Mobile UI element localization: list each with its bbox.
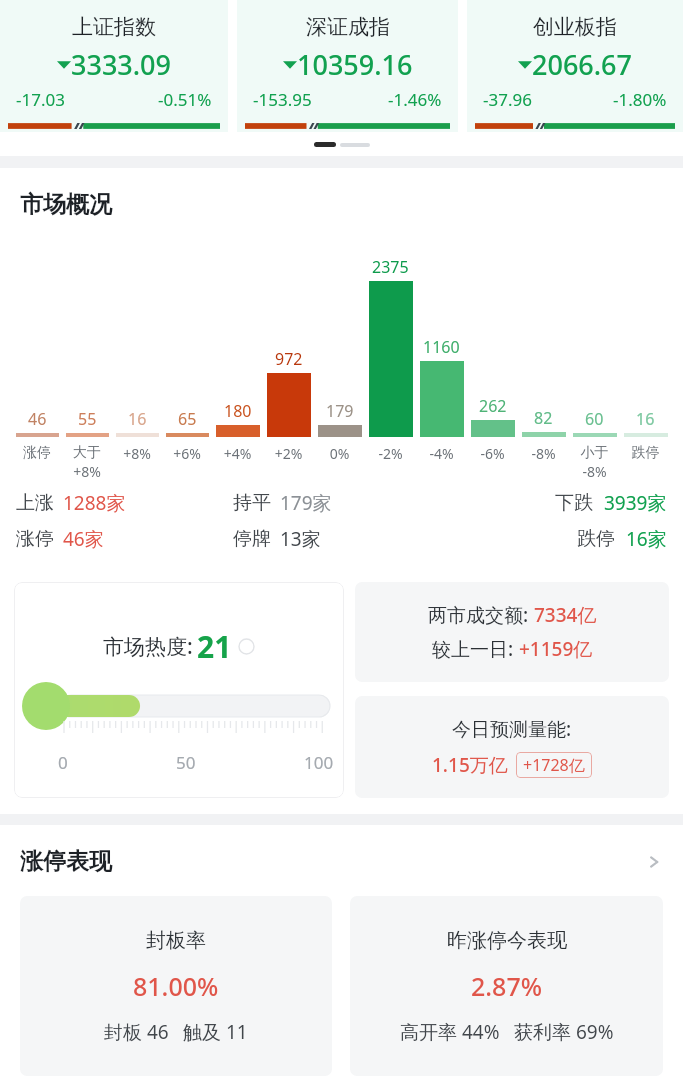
staticText: -37.96 — [483, 88, 532, 111]
staticText: 3939家 — [604, 490, 667, 516]
button[interactable]: 涨停表现 — [0, 847, 683, 876]
staticText: 2.87% — [471, 969, 543, 1003]
staticText: 封板 46 — [104, 1019, 169, 1045]
staticText: +1728亿 — [523, 754, 585, 776]
button[interactable]: 封板率 — [20, 896, 332, 1076]
staticText: 2066.67 — [532, 46, 633, 83]
staticText: 涨停 — [12, 444, 62, 462]
staticText: 16 — [128, 408, 147, 430]
staticText: 55 — [78, 408, 97, 430]
staticText: 触及 11 — [183, 1019, 248, 1045]
staticText: -8% — [518, 444, 569, 463]
staticText: 0 — [58, 751, 68, 774]
staticText: 创业板指 — [533, 14, 617, 40]
staticText: 上证指数 — [72, 14, 156, 40]
staticText: 10359.16 — [297, 46, 413, 83]
staticText: 82 — [534, 407, 553, 429]
button[interactable]: 昨涨停今表现 — [350, 896, 663, 1076]
staticText: 0% — [314, 444, 365, 463]
staticText: 16 — [636, 408, 655, 430]
staticText: 16家 — [626, 526, 667, 552]
staticText: -1.46% — [388, 88, 442, 111]
staticText: 昨涨停今表现 — [447, 928, 567, 953]
staticText: 1288家 — [63, 490, 126, 516]
staticText: 50 — [176, 751, 196, 774]
other: 更多 — [645, 853, 663, 871]
staticText: 跌停 — [577, 527, 615, 551]
staticText: 深证成指 — [306, 14, 390, 40]
staticText: -6% — [467, 444, 518, 463]
staticText: 46家 — [63, 526, 104, 552]
staticText: 高开率 44% — [400, 1019, 500, 1045]
staticText: 100 — [304, 751, 334, 774]
staticText: 获利率 69% — [514, 1019, 614, 1045]
staticText: 小于 -8% — [569, 444, 620, 481]
staticText: 262 — [479, 395, 507, 417]
staticText: 较上一日: — [432, 636, 514, 662]
staticText: +1159亿 — [519, 636, 593, 662]
staticText: 两市成交额: — [428, 602, 529, 628]
staticText: 涨停表现 — [20, 847, 112, 876]
staticText: 81.00% — [133, 969, 219, 1003]
staticText: 3333.09 — [71, 46, 172, 83]
staticText: 179 — [326, 400, 354, 422]
button[interactable]: 市场热度: — [14, 582, 344, 798]
staticText: -4% — [416, 444, 467, 463]
staticText: 972 — [275, 348, 303, 370]
button[interactable]: 今日预测量能: — [355, 696, 669, 798]
staticText: 60 — [585, 408, 604, 430]
staticText: 65 — [178, 408, 197, 430]
staticText: -153.95 — [253, 88, 312, 111]
staticText: +2% — [263, 444, 314, 463]
staticText: 180 — [224, 400, 252, 422]
staticText: 179家 — [280, 490, 332, 516]
staticText: 市场热度: — [103, 632, 193, 661]
button[interactable]: 创业板指 — [467, 0, 683, 132]
staticText: +8% — [112, 444, 162, 463]
staticText: -17.03 — [16, 88, 65, 111]
staticText: 21 — [197, 626, 232, 667]
staticText: 7334亿 — [534, 602, 597, 628]
staticText: 1160 — [423, 336, 460, 358]
button[interactable]: 两市成交额: — [355, 582, 669, 682]
staticText: -1.80% — [613, 88, 667, 111]
staticText: 1.15万亿 — [432, 752, 508, 778]
staticText: 停牌 — [233, 527, 271, 551]
staticText: 持平 — [233, 491, 271, 515]
button[interactable]: 上证指数 — [0, 0, 228, 132]
staticText: 涨停 — [16, 527, 54, 551]
staticText: 大于 +8% — [62, 444, 112, 481]
staticText: 13家 — [280, 526, 321, 552]
staticText: +6% — [162, 444, 212, 463]
other: 说明 — [238, 638, 255, 655]
staticText: 今日预测量能: — [452, 716, 572, 742]
staticText: 下跌 — [555, 491, 593, 515]
staticText: -0.51% — [158, 88, 212, 111]
staticText: 跌停 — [620, 444, 671, 462]
button[interactable]: 深证成指 — [237, 0, 458, 132]
staticText: +4% — [212, 444, 263, 463]
staticText: 46 — [28, 408, 47, 430]
staticText: -2% — [365, 444, 416, 463]
staticText: 封板率 — [146, 928, 206, 953]
staticText: 上涨 — [16, 491, 54, 515]
staticText: 2375 — [372, 256, 409, 278]
staticText: 市场概况 — [20, 190, 112, 219]
